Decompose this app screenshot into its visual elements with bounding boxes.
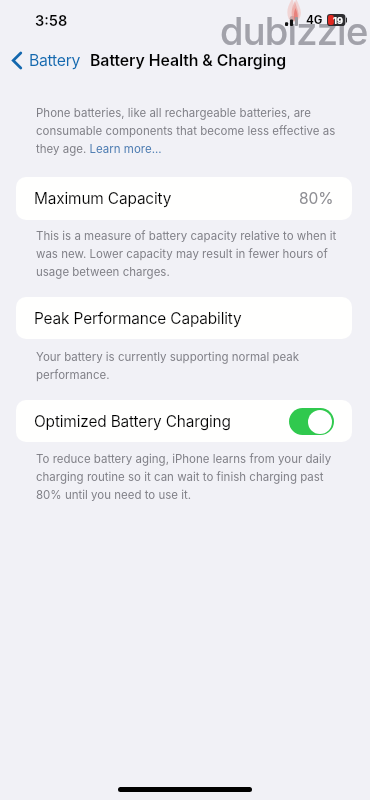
staticText: 80%: [299, 189, 334, 208]
button[interactable]: Battery: [0, 48, 87, 73]
staticText: To reduce battery aging, iPhone learns f…: [36, 449, 338, 503]
staticText: This is a measure of battery capacity re…: [36, 226, 338, 280]
staticText: dubizzle: [220, 8, 368, 54]
button[interactable]: Optimized Battery Charging toggle: [289, 408, 334, 435]
staticText: Battery Health & Charging: [90, 51, 287, 70]
staticText: Battery: [29, 51, 81, 70]
button[interactable]: Optimized Battery Charging: [16, 400, 352, 442]
button[interactable]: Maximum Capacity: [16, 177, 352, 220]
staticText: Peak Performance Capability: [34, 309, 242, 328]
staticText: 3:58: [35, 12, 68, 30]
staticText: Maximum Capacity: [34, 189, 172, 208]
staticText: 19: [333, 15, 343, 26]
button[interactable]: Peak Performance Capability: [16, 297, 352, 339]
staticText: Optimized Battery Charging: [34, 412, 231, 431]
staticText: Phone batteries, like all rechargeable b…: [36, 103, 336, 157]
staticText: 4G: [306, 13, 323, 27]
staticText: Your battery is currently supporting nor…: [36, 347, 338, 383]
